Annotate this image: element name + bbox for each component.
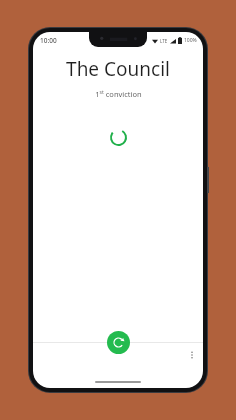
button[interactable]: Refresh xyxy=(107,331,130,354)
staticText: 10:00 xyxy=(40,36,57,45)
staticText: The Council xyxy=(66,56,170,82)
staticText: LTE xyxy=(160,38,168,44)
staticText: 100% xyxy=(184,37,197,44)
button[interactable]: More options xyxy=(184,347,200,363)
staticText: 1st conviction xyxy=(95,89,142,99)
